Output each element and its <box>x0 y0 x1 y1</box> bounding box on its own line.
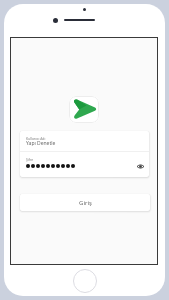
button[interactable]: Show password <box>131 152 149 177</box>
staticText: Şifre <box>26 157 34 162</box>
staticText: Yapı Denetle <box>26 140 56 147</box>
button[interactable]: Kullanıcı Adı <box>20 131 149 151</box>
staticText: Kullanıcı Adı <box>26 136 46 141</box>
staticText: Giriş <box>79 199 92 207</box>
button[interactable]: Giriş <box>20 194 150 211</box>
